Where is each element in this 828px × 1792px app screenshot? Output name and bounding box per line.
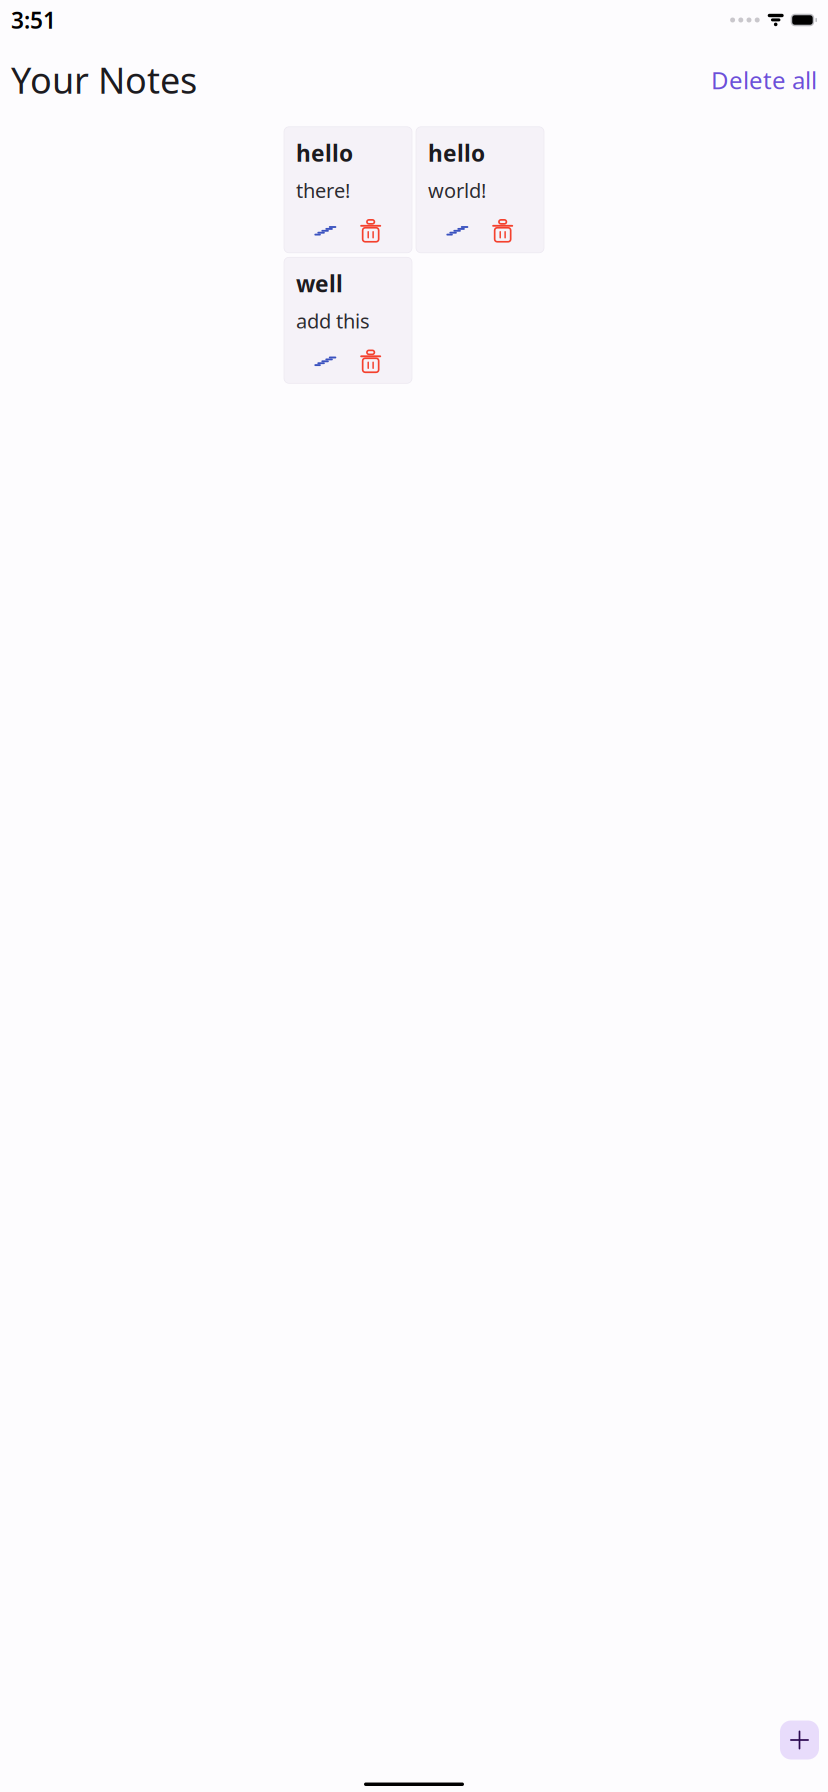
staticText: add this: [296, 307, 370, 334]
staticText: hello: [428, 138, 485, 168]
button[interactable]: Edit note: [441, 217, 473, 245]
staticText: world!: [428, 177, 486, 203]
button[interactable]: Edit note: [309, 217, 341, 245]
staticText: well: [296, 268, 343, 298]
staticText: 3:51: [11, 5, 56, 35]
button[interactable]: Delete note: [487, 217, 519, 245]
button[interactable]: Add note: [780, 1720, 819, 1759]
staticText: there!: [296, 177, 350, 203]
button[interactable]: Delete note: [355, 347, 387, 375]
button[interactable]: Delete note: [355, 217, 387, 245]
staticText: Your Notes: [11, 56, 197, 104]
staticText: Delete all: [711, 64, 817, 96]
staticText: hello: [296, 138, 353, 168]
button[interactable]: Delete all: [711, 64, 817, 96]
button[interactable]: Edit note: [309, 347, 341, 375]
